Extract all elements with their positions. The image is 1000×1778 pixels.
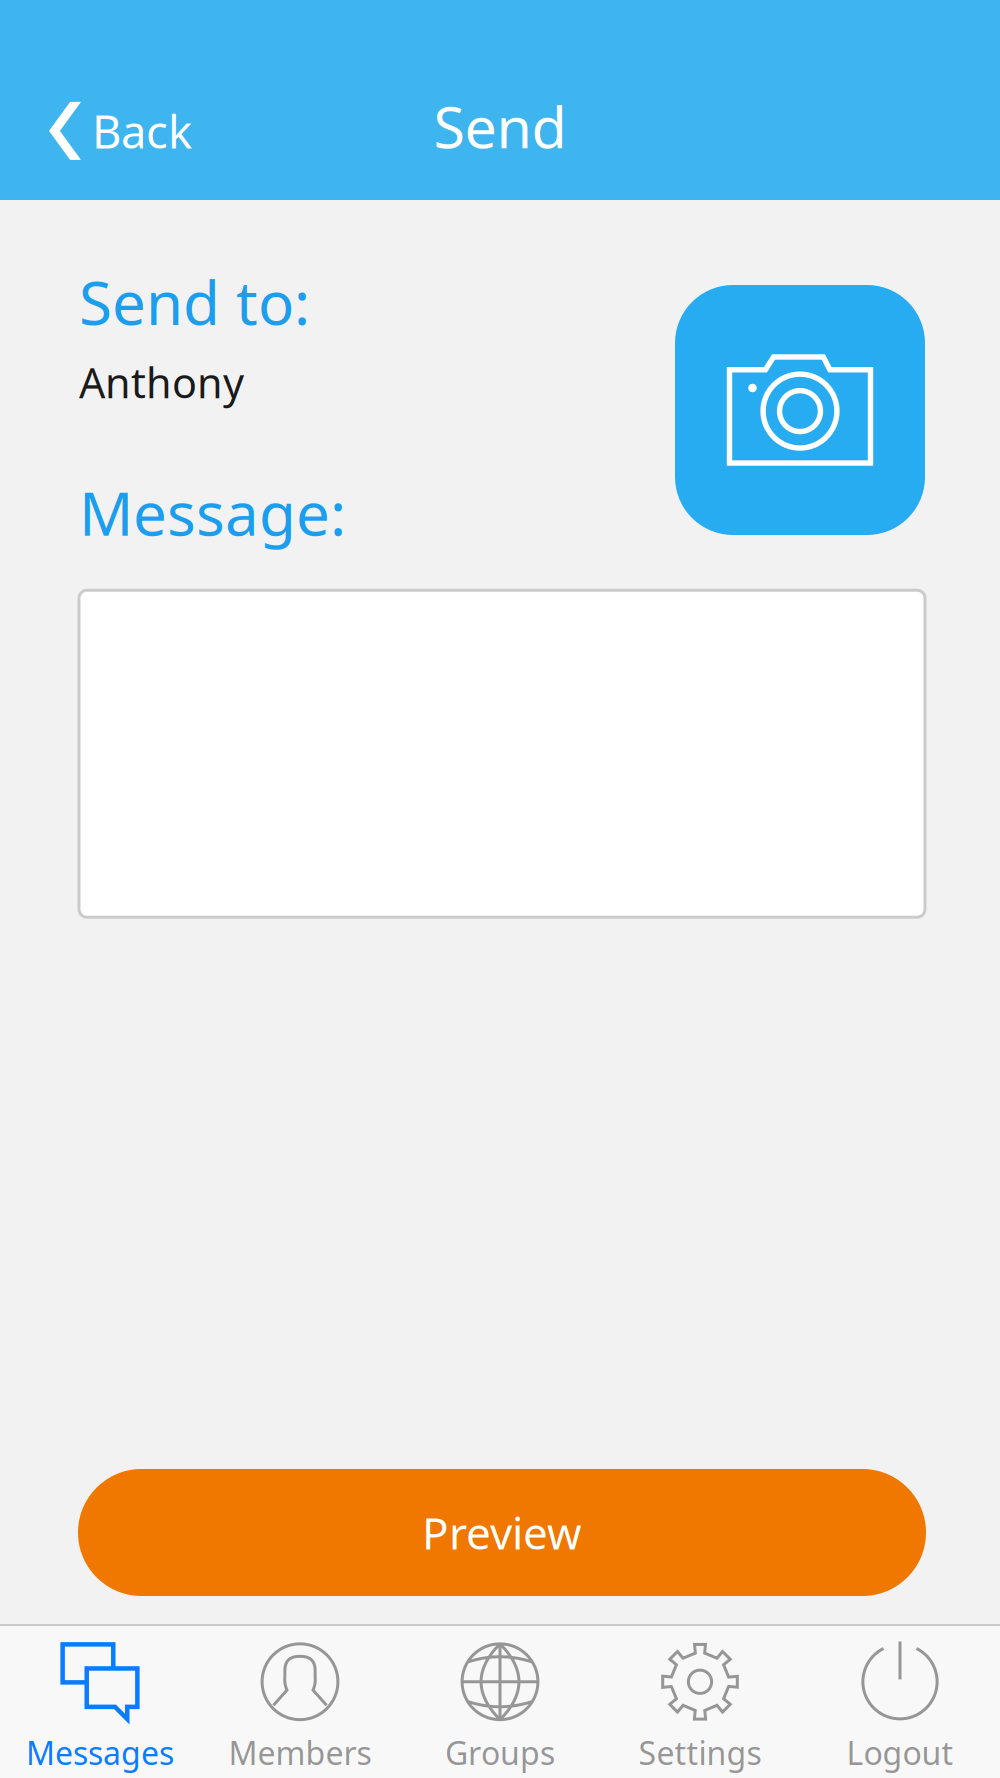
staticText: Send [433, 88, 566, 164]
button[interactable]: Messages [0, 1628, 200, 1776]
staticText: Messages [26, 1731, 174, 1774]
button[interactable]: Settings [600, 1628, 800, 1776]
staticText: Logout [846, 1731, 953, 1774]
button[interactable]: Groups [400, 1628, 600, 1776]
staticText: Message: [79, 473, 346, 552]
staticText: Groups [445, 1731, 555, 1774]
staticText: Members [228, 1731, 371, 1774]
button[interactable]: Back [0, 87, 216, 175]
staticText: Settings [638, 1731, 761, 1774]
button[interactable]: Take photo [675, 285, 925, 535]
staticText: Back [92, 101, 192, 161]
staticText: Preview [422, 1503, 582, 1562]
button[interactable]: Members [200, 1628, 400, 1776]
staticText: Anthony [79, 355, 244, 410]
button[interactable]: Preview [78, 1469, 926, 1596]
button[interactable]: Logout [800, 1628, 1000, 1776]
staticText: Send to: [79, 262, 310, 342]
